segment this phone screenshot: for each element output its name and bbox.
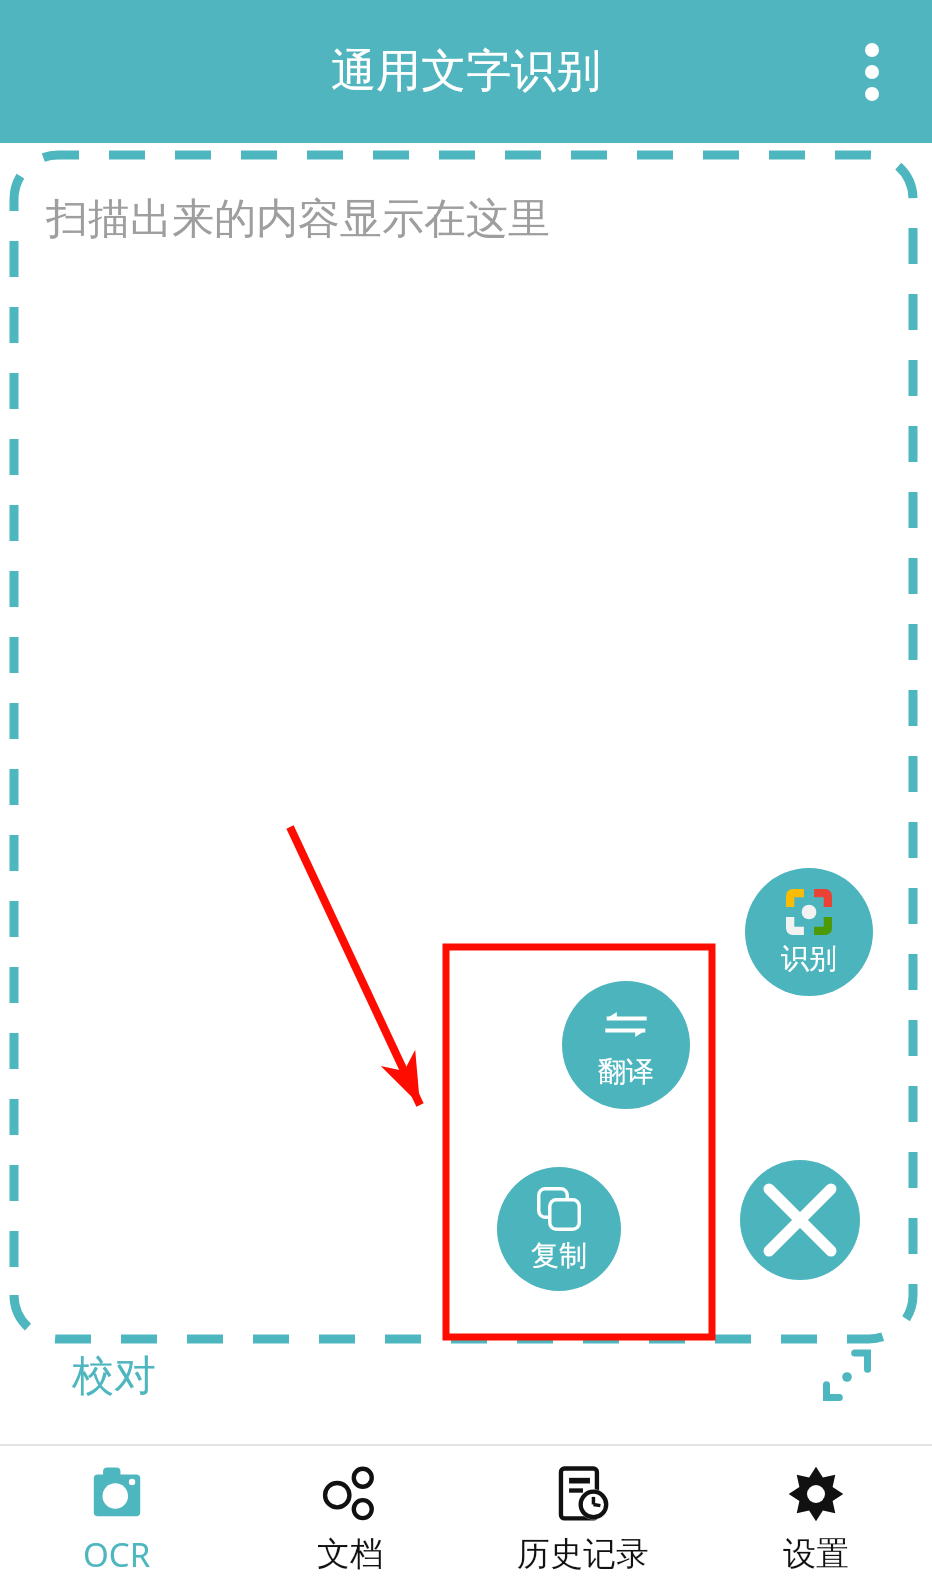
button[interactable]: 复制 [497, 1167, 621, 1291]
staticText: 通用文字识别 [331, 43, 601, 100]
staticText: 复制 [531, 1238, 587, 1273]
button[interactable]: 文档 [233, 1446, 466, 1594]
staticText: OCR [83, 1532, 151, 1577]
staticText: 历史记录 [517, 1533, 649, 1575]
staticText: 扫描出来的内容显示在这里 [46, 193, 550, 246]
staticText: 文档 [317, 1533, 383, 1575]
button[interactable]: More options [832, 32, 912, 112]
button[interactable]: OCR [0, 1446, 233, 1594]
staticText: 翻译 [598, 1054, 654, 1089]
staticText: 设置 [783, 1533, 849, 1575]
button[interactable]: 关闭 [740, 1160, 860, 1280]
button[interactable]: 历史记录 [466, 1446, 699, 1594]
button[interactable]: 校对 [72, 1350, 156, 1403]
button[interactable]: 翻译 [562, 981, 690, 1109]
button[interactable]: 全屏 [812, 1342, 882, 1412]
staticText: 识别 [781, 941, 837, 976]
button[interactable]: 设置 [699, 1446, 932, 1594]
button[interactable]: 识别 [745, 868, 873, 996]
